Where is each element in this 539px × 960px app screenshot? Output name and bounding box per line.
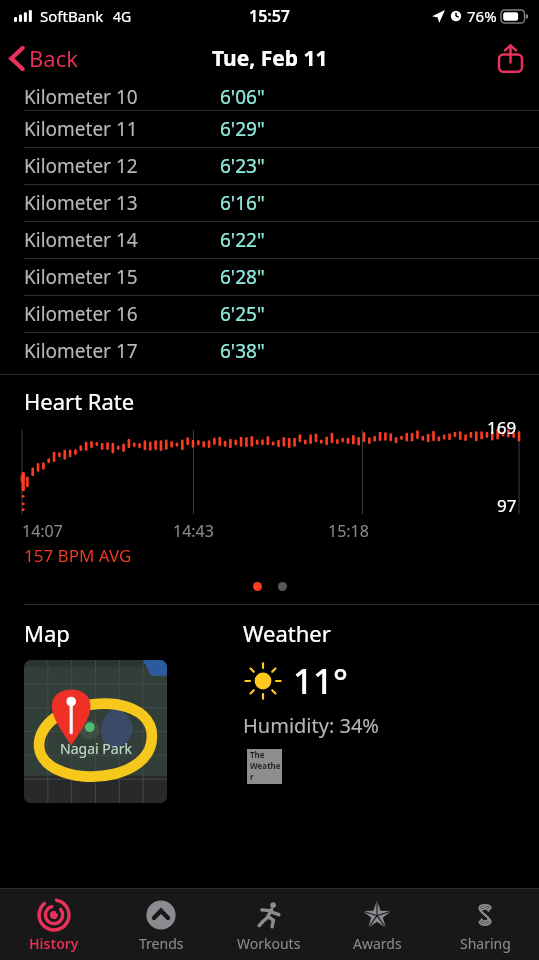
staticText: 6'06" (220, 84, 265, 110)
staticText: Kilometer 14 (24, 227, 220, 253)
button[interactable]: Route map (24, 660, 167, 803)
button[interactable]: Kilometer 16 (0, 295, 539, 332)
staticText: Kilometer 10 (24, 84, 220, 110)
staticText: Kilometer 17 (24, 338, 220, 364)
button[interactable]: History (0, 889, 107, 960)
staticText: Map (24, 618, 70, 648)
button[interactable]: Kilometer 10 (0, 84, 539, 110)
staticText: 6'38" (220, 338, 265, 364)
staticText: Tue, Feb 11 (212, 44, 328, 73)
button[interactable]: Kilometer 13 (0, 184, 539, 221)
staticText: 76% (467, 6, 497, 26)
button[interactable]: Share (482, 38, 539, 79)
staticText: 4G (113, 7, 132, 26)
staticText: Humidity: 34% (243, 712, 379, 739)
button[interactable]: Kilometer 14 (0, 221, 539, 258)
staticText: History (29, 934, 79, 953)
button[interactable]: Trends (107, 889, 215, 960)
staticText: 157 BPM AVG (24, 544, 132, 567)
staticText: 14:07 (22, 520, 63, 542)
button[interactable]: Kilometer 17 (0, 332, 539, 369)
staticText: 169 (487, 416, 517, 439)
button[interactable]: Sharing (431, 889, 539, 960)
staticText: SoftBank (40, 6, 104, 26)
staticText: Kilometer 13 (24, 190, 220, 216)
staticText: Trends (139, 934, 184, 953)
staticText: Workouts (237, 934, 301, 953)
staticText: The Weather Channel (250, 749, 282, 784)
staticText: 97 (497, 494, 517, 517)
staticText: Heart Rate (24, 386, 135, 416)
staticText: Weather (243, 618, 331, 648)
button[interactable]: Kilometer 15 (0, 258, 539, 295)
staticText: Back (29, 43, 78, 73)
staticText: Nagai Park (60, 739, 132, 758)
staticText: 6'25" (220, 301, 265, 327)
staticText: 6'29" (220, 116, 265, 142)
staticText: Sharing (460, 934, 511, 953)
staticText: 6'28" (220, 264, 265, 290)
button[interactable]: Workouts (215, 889, 323, 960)
staticText: Awards (353, 934, 402, 953)
staticText: Kilometer 12 (24, 153, 220, 179)
staticText: 6'23" (220, 153, 265, 179)
staticText: Kilometer 16 (24, 301, 220, 327)
button[interactable]: Awards (323, 889, 431, 960)
staticText: Kilometer 11 (24, 116, 220, 142)
button[interactable]: Kilometer 12 (0, 147, 539, 184)
staticText: 14:43 (173, 520, 214, 542)
staticText: 6'22" (220, 227, 265, 253)
staticText: 6'16" (220, 190, 265, 216)
staticText: Kilometer 15 (24, 264, 220, 290)
staticText: 11° (293, 657, 348, 705)
staticText: 15:18 (328, 520, 369, 542)
button[interactable]: Back (0, 35, 92, 81)
button[interactable]: Kilometer 11 (0, 110, 539, 147)
staticText: 15:57 (249, 5, 291, 27)
